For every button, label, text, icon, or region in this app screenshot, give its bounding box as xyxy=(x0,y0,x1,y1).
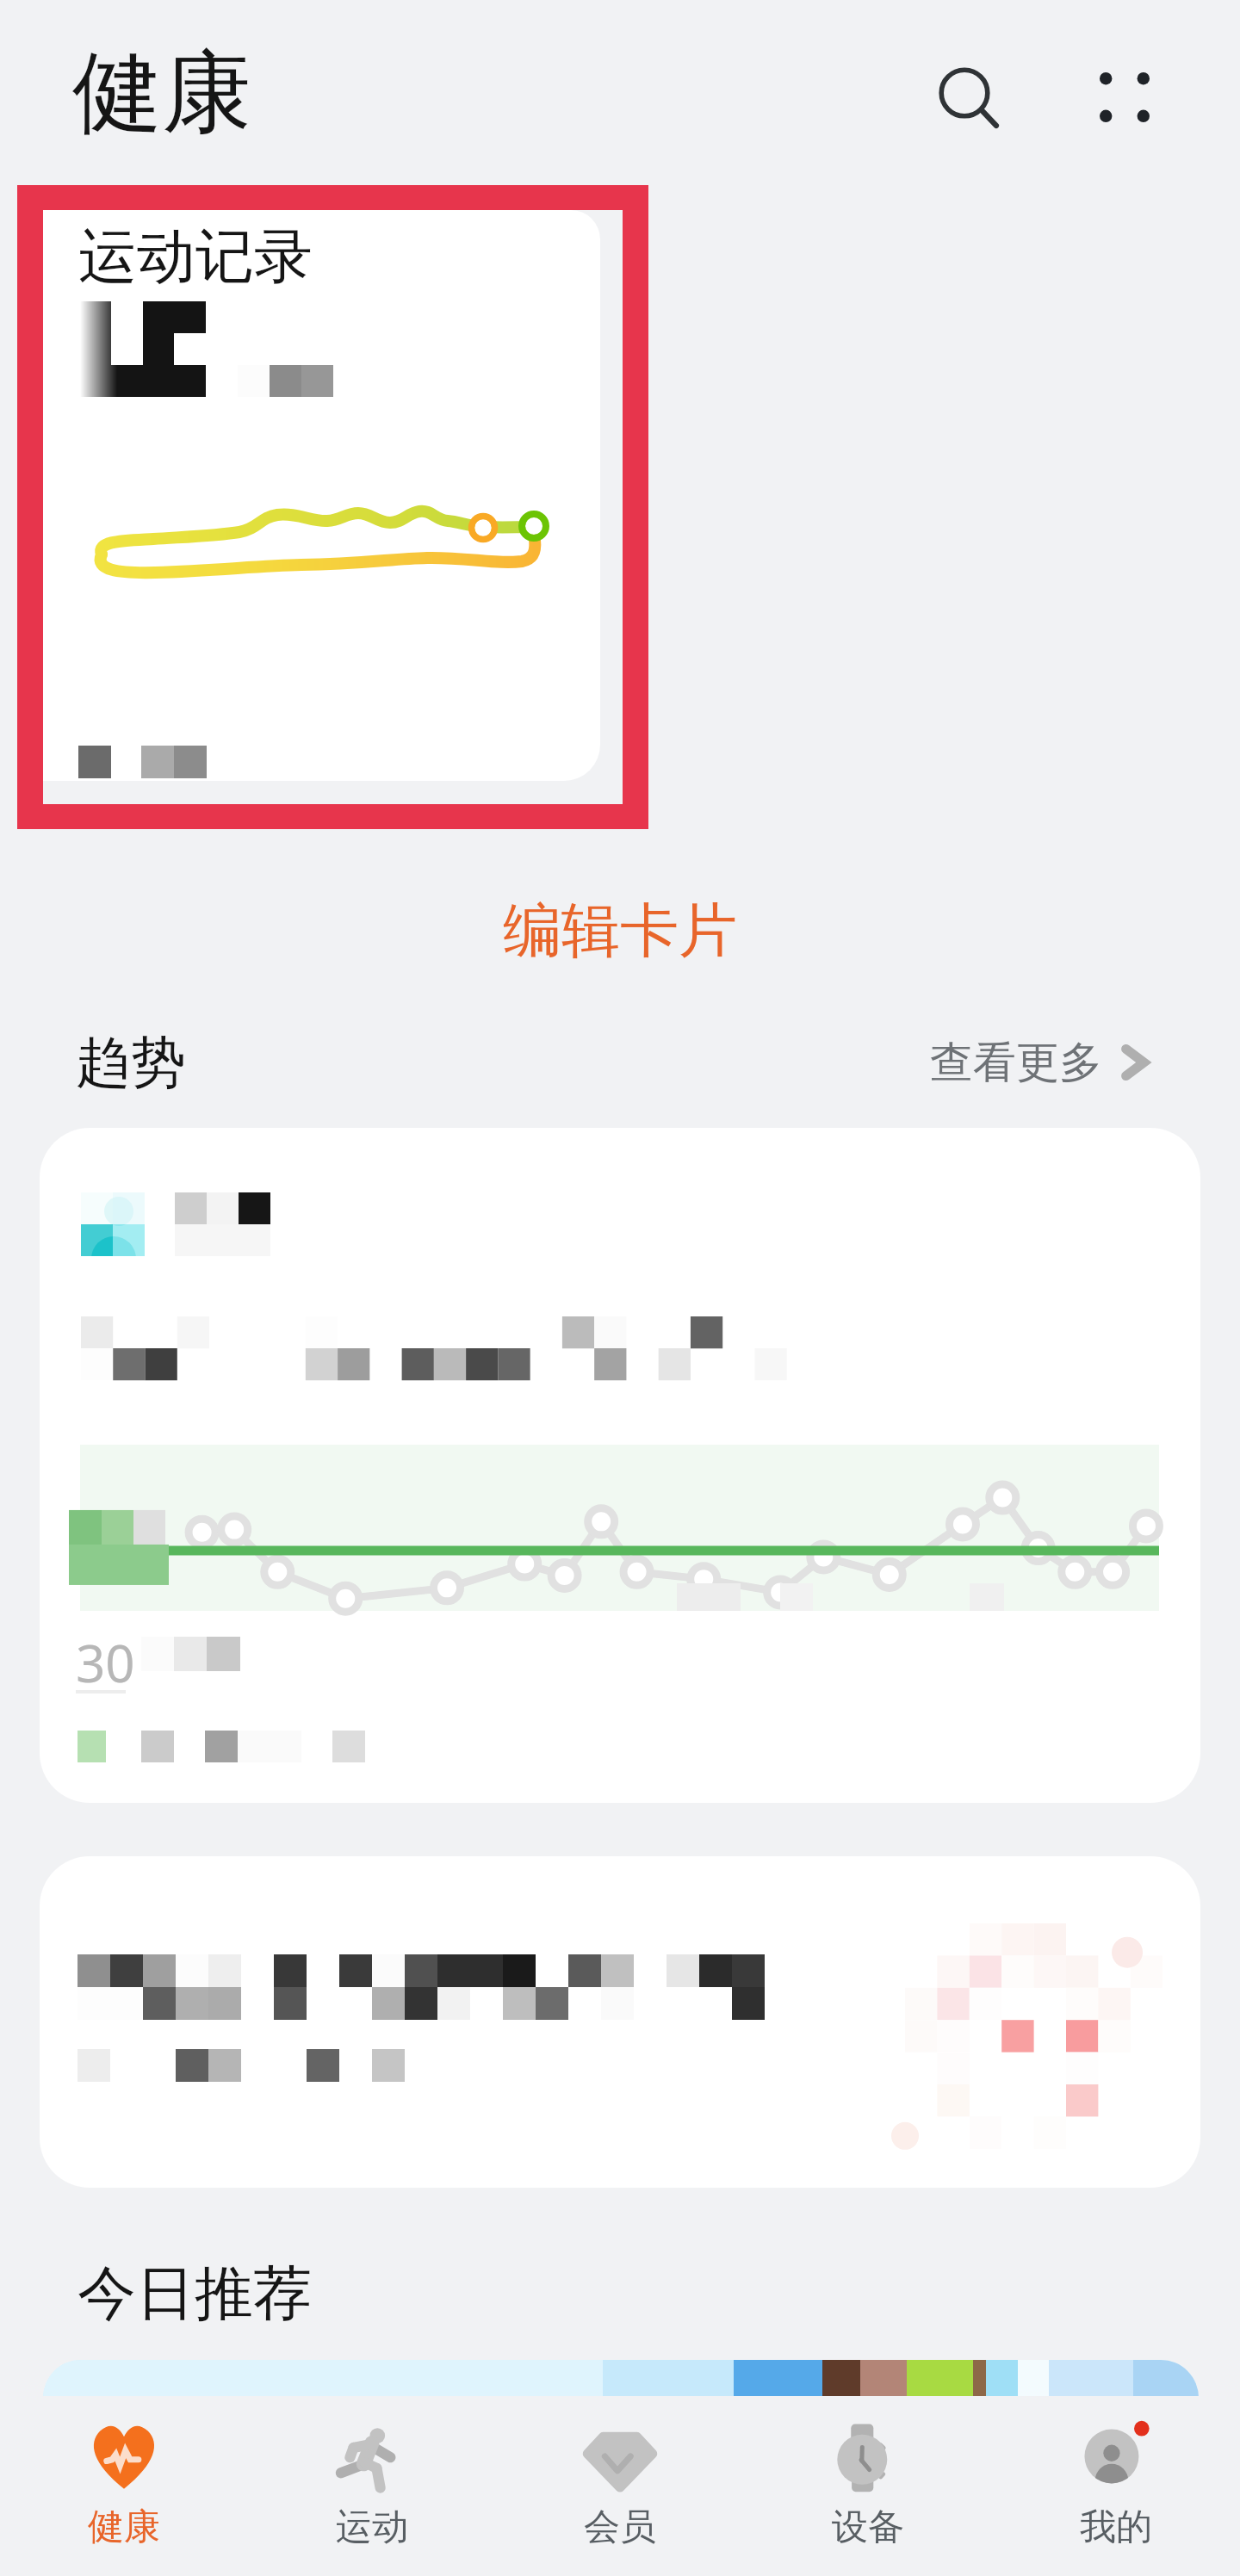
staticText: 运动记录 xyxy=(78,220,313,294)
button[interactable] xyxy=(43,2360,1199,2398)
button[interactable]: 查看更多 xyxy=(930,1023,1157,1102)
staticText: 设备 xyxy=(832,2505,904,2550)
staticText: 30 xyxy=(76,1627,135,1698)
staticText: 健康 xyxy=(88,2505,160,2550)
button[interactable]: 运动 xyxy=(248,2396,496,2576)
button[interactable]: 30 xyxy=(40,1128,1200,1803)
button[interactable]: 我的 xyxy=(992,2396,1240,2576)
button[interactable]: 运动记录 xyxy=(17,185,648,829)
button[interactable]: 会员 xyxy=(496,2396,744,2576)
staticText: 查看更多 xyxy=(930,1036,1102,1090)
staticText: 我的 xyxy=(1080,2505,1152,2550)
staticText: 趋势 xyxy=(76,1028,186,1098)
staticText: 会员 xyxy=(584,2505,656,2550)
staticText: 运动 xyxy=(336,2505,408,2550)
staticText: 健康 xyxy=(72,37,251,150)
staticText: 今日推荐 xyxy=(77,2257,312,2331)
staticText: 编辑卡片 xyxy=(503,895,737,969)
button[interactable]: Search xyxy=(911,40,1018,146)
button[interactable] xyxy=(40,1856,1200,2188)
button[interactable]: 健康 xyxy=(0,2396,248,2576)
button[interactable]: More options xyxy=(1071,44,1178,151)
button[interactable]: 编辑卡片 xyxy=(465,887,775,976)
button[interactable]: 设备 xyxy=(744,2396,992,2576)
